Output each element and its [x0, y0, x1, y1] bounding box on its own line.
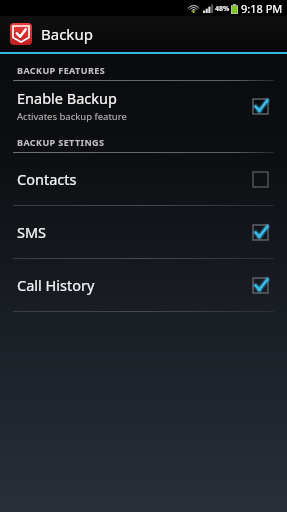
button[interactable]: Backup, navigate up — [10, 23, 93, 45]
staticText: Backup — [41, 24, 93, 44]
staticText: BACKUP FEATURES — [17, 64, 105, 76]
button[interactable]: Unchecked — [249, 168, 271, 190]
staticText: Contacts — [17, 169, 249, 189]
staticText: Activates backup feature — [17, 110, 127, 123]
button[interactable]: Checked — [249, 95, 271, 117]
button[interactable]: Enable Backup — [0, 81, 287, 130]
button[interactable]: Checked — [249, 221, 271, 243]
button[interactable]: Call History — [0, 259, 287, 311]
staticText: BACKUP SETTINGS — [17, 136, 105, 148]
staticText: Enable Backup — [17, 88, 117, 108]
staticText: 48% — [215, 4, 230, 14]
button[interactable]: Contacts — [0, 153, 287, 205]
button[interactable]: SMS — [0, 206, 287, 258]
staticText: SMS — [17, 222, 249, 242]
staticText: 9:18 PM — [241, 1, 283, 16]
staticText: Call History — [17, 275, 249, 295]
button[interactable]: Checked — [249, 274, 271, 296]
